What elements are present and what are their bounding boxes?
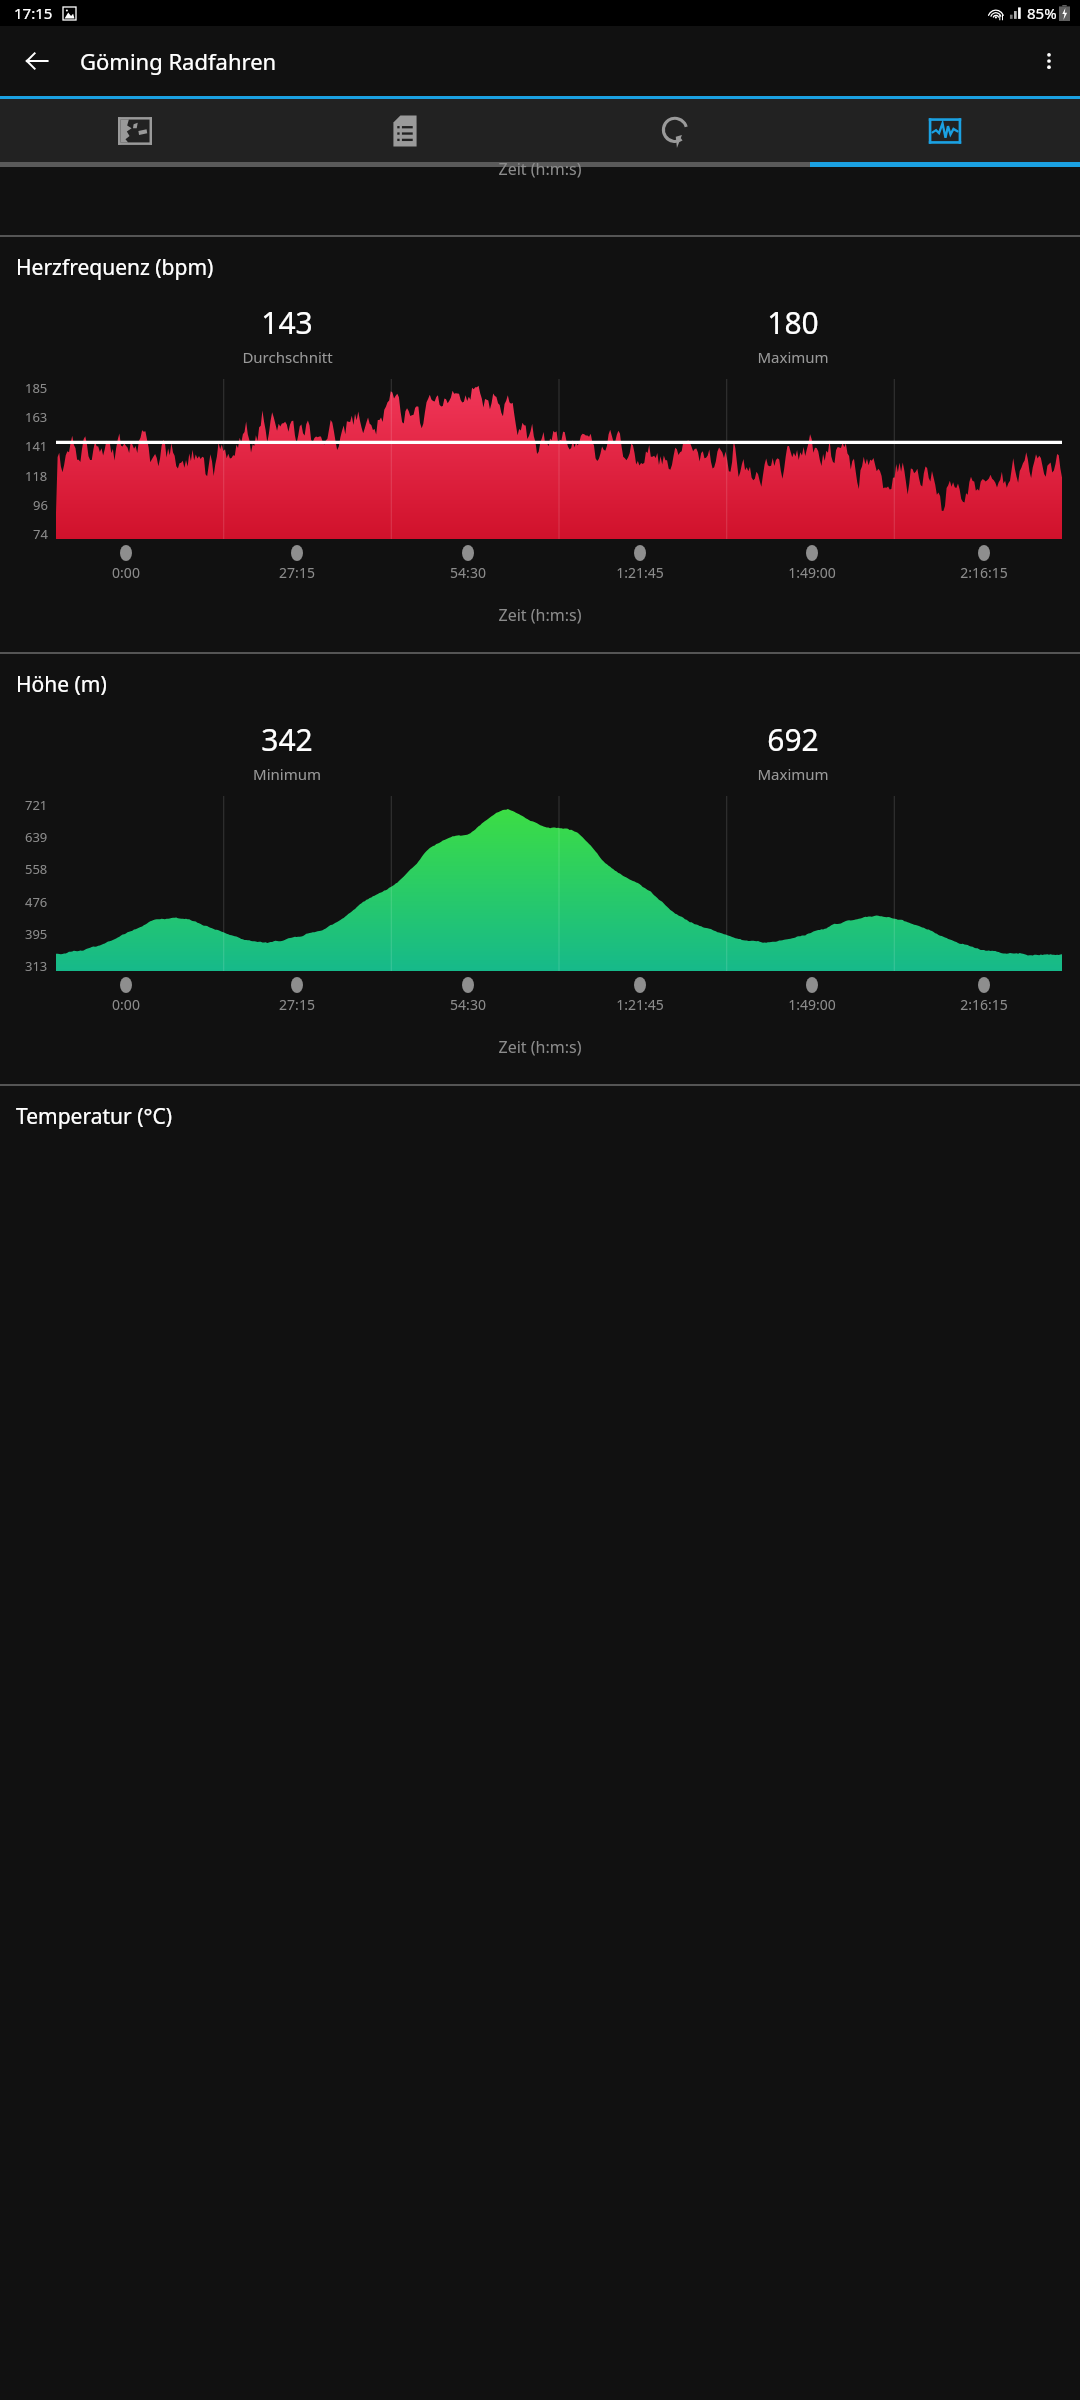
staticText: 118 xyxy=(25,467,48,485)
staticText: 54:30 xyxy=(450,563,486,582)
staticText: 639 xyxy=(25,828,48,846)
staticText: 180 xyxy=(767,302,819,343)
staticText: 185 xyxy=(25,379,48,397)
staticText: 27:15 xyxy=(279,563,315,582)
button[interactable]: Details xyxy=(270,99,540,162)
staticText: 54:30 xyxy=(450,995,486,1014)
staticText: 27:15 xyxy=(279,995,315,1014)
staticText: Minimum xyxy=(253,764,321,784)
staticText: 721 xyxy=(25,796,48,814)
staticText: 163 xyxy=(25,408,48,426)
staticText: Göming Radfahren xyxy=(80,46,277,76)
staticText: 0:00 xyxy=(112,563,140,582)
staticText: Zeit (h:m:s) xyxy=(0,604,1080,626)
staticText: 558 xyxy=(25,860,48,878)
staticText: 143 xyxy=(261,302,313,343)
staticText: 0:00 xyxy=(112,995,140,1014)
staticText: Zeit (h:m:s) xyxy=(0,1036,1080,1058)
staticText: 74 xyxy=(33,525,48,543)
staticText: 1:21:45 xyxy=(616,995,664,1014)
button[interactable]: Karte xyxy=(0,99,270,162)
button[interactable]: Diagramme xyxy=(810,99,1080,162)
staticText: 1:49:00 xyxy=(788,995,836,1014)
staticText: 85% xyxy=(1027,3,1057,23)
staticText: 96 xyxy=(33,496,48,514)
staticText: Durchschnitt xyxy=(242,347,333,367)
staticText: Maximum xyxy=(757,347,829,367)
staticText: Herzfrequenz (bpm) xyxy=(16,253,214,282)
button[interactable]: Runden xyxy=(540,99,810,162)
staticText: Temperatur (°C) xyxy=(16,1102,173,1131)
staticText: 1:49:00 xyxy=(788,563,836,582)
staticText: 141 xyxy=(25,437,48,455)
staticText: Maximum xyxy=(757,764,829,784)
staticText: 313 xyxy=(25,957,48,975)
button[interactable]: Zurück xyxy=(14,38,60,84)
staticText: 395 xyxy=(25,925,48,943)
staticText: Zeit (h:m:s) xyxy=(0,158,1080,180)
button[interactable]: Weitere Optionen xyxy=(1026,38,1072,84)
staticText: 17:15 xyxy=(14,3,53,23)
staticText: 2:16:15 xyxy=(960,995,1008,1014)
staticText: Höhe (m) xyxy=(16,670,107,699)
staticText: 476 xyxy=(25,893,48,911)
staticText: 2:16:15 xyxy=(960,563,1008,582)
staticText: 692 xyxy=(767,719,819,760)
staticText: 342 xyxy=(261,719,313,760)
staticText: 1:21:45 xyxy=(616,563,664,582)
